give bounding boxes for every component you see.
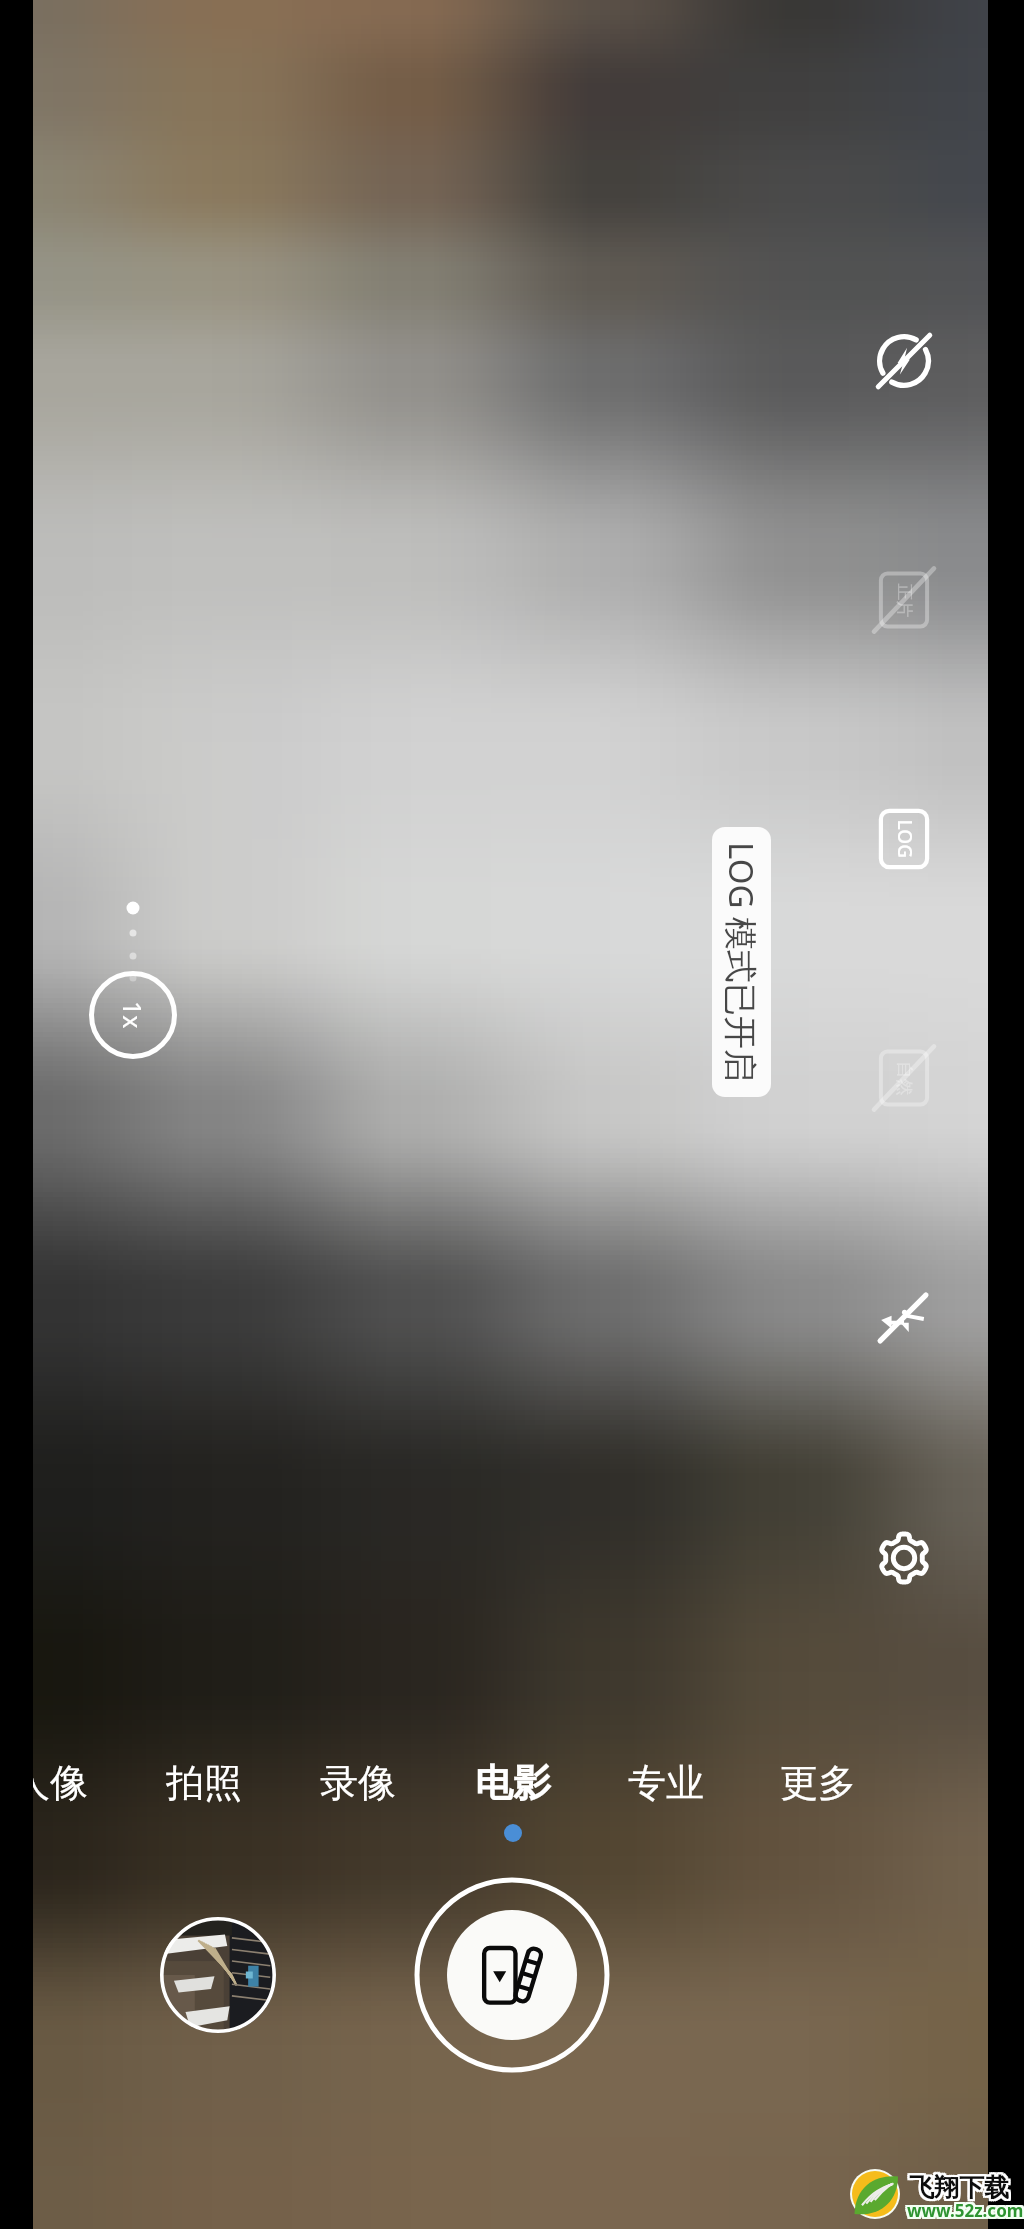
- staticText: 人像: [12, 1759, 88, 1807]
- button[interactable]: Zoom 1x: [89, 971, 177, 1059]
- staticText: 1x: [116, 1001, 150, 1029]
- staticText: LOG: [891, 819, 917, 858]
- button[interactable]: AI scene detection off: [863, 1278, 943, 1358]
- staticText: www.52z.com: [909, 2197, 1024, 2220]
- button[interactable]: LOG 模式已开启: [712, 827, 771, 1097]
- button[interactable]: Gallery: [160, 1917, 276, 2033]
- staticText: 飞翔下载: [907, 2172, 1007, 2203]
- staticText: www.52z.com: [907, 2201, 1024, 2224]
- button[interactable]: 拍照: [134, 1748, 274, 1818]
- staticText: www.52z.com: [905, 2197, 1022, 2220]
- staticText: 飞翔下载: [911, 2172, 1011, 2203]
- button[interactable]: 人像: [0, 1748, 120, 1818]
- staticText: LOG 模式已开启: [719, 842, 764, 1083]
- staticText: 飞翔下载: [909, 2170, 1009, 2201]
- staticText: 飞翔下载: [907, 2174, 1007, 2205]
- staticText: www.52z.com: [907, 2197, 1024, 2220]
- staticText: www.52z.com: [909, 2201, 1024, 2224]
- staticText: www.52z.com: [909, 2199, 1024, 2222]
- staticText: 自然: [893, 1061, 914, 1095]
- staticText: www.52z.com: [905, 2199, 1022, 2222]
- staticText: 专业: [628, 1759, 704, 1807]
- button[interactable]: Vivid colours off: [874, 563, 934, 637]
- staticText: 拍照: [166, 1759, 242, 1807]
- button[interactable]: Flash off: [864, 321, 944, 401]
- staticText: 正片: [893, 583, 914, 617]
- staticText: 飞翔下载: [911, 2170, 1011, 2201]
- staticText: www.52z.com: [905, 2201, 1022, 2224]
- staticText: 飞翔下载: [909, 2172, 1009, 2203]
- button[interactable]: 更多: [748, 1748, 888, 1818]
- staticText: 录像: [320, 1759, 396, 1807]
- button[interactable]: Start recording: [417, 1880, 607, 2070]
- button[interactable]: 专业: [596, 1748, 736, 1818]
- button[interactable]: 录像: [288, 1748, 428, 1818]
- staticText: 飞翔下载: [909, 2174, 1009, 2205]
- button[interactable]: 电影: [443, 1748, 583, 1818]
- button[interactable]: Filter off: [874, 1041, 934, 1115]
- staticText: 飞翔下载: [911, 2174, 1011, 2205]
- staticText: 电影: [475, 1759, 551, 1807]
- staticText: 更多: [780, 1759, 856, 1807]
- button[interactable]: LOG mode on: [874, 809, 934, 869]
- button[interactable]: Settings: [864, 1518, 944, 1598]
- staticText: www.52z.com: [907, 2199, 1024, 2222]
- staticText: 飞翔下载: [907, 2170, 1007, 2201]
